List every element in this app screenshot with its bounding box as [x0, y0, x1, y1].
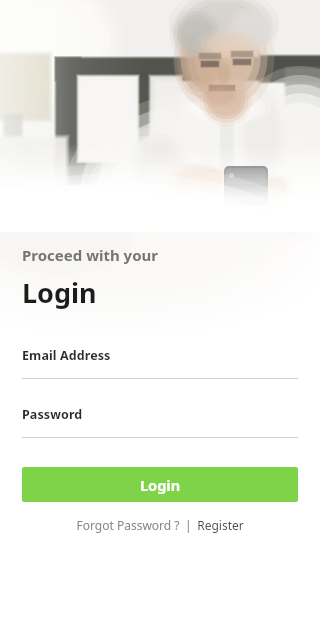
staticText: Password	[22, 406, 83, 423]
button[interactable]: Register	[195, 515, 246, 535]
button[interactable]: Password	[22, 379, 298, 438]
staticText: Proceed with your	[22, 245, 159, 265]
staticText: Register	[197, 517, 244, 533]
button[interactable]: Email Address	[22, 311, 298, 379]
staticText: Email Address	[22, 347, 111, 364]
staticText: Forgot Password ?	[76, 517, 180, 533]
staticText: Login	[22, 274, 97, 311]
button[interactable]: Forgot Password ?	[74, 515, 182, 535]
staticText: Login	[140, 475, 181, 495]
button[interactable]: Login	[22, 467, 298, 502]
staticText: |	[182, 517, 195, 533]
